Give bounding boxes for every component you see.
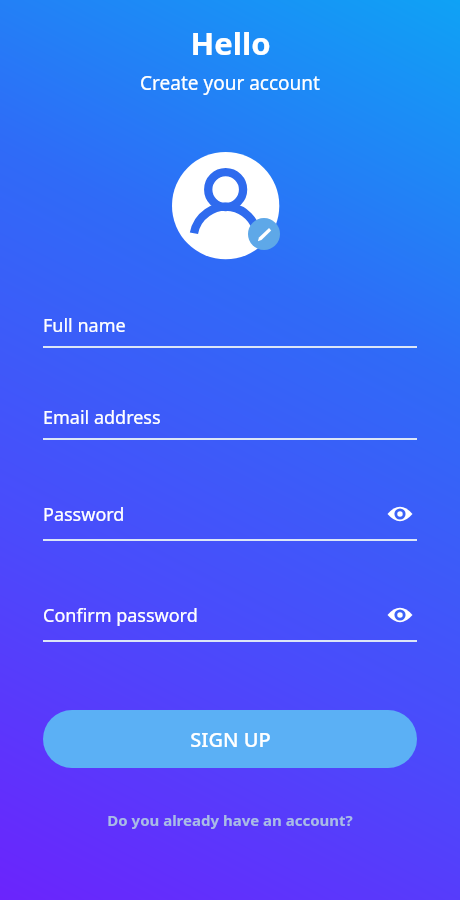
button[interactable]: Do you already have an account? (0, 810, 460, 830)
button[interactable]: Password (43, 497, 417, 541)
button[interactable]: Show password (383, 497, 417, 531)
button[interactable]: Full name (43, 313, 417, 348)
staticText: Hello (190, 22, 271, 64)
button[interactable]: Show confirm password (383, 598, 417, 632)
staticText: Password (43, 502, 383, 527)
staticText: SIGN UP (190, 726, 271, 753)
staticText: Email address (43, 405, 417, 430)
staticText: Do you already have an account? (107, 810, 353, 830)
staticText: Confirm password (43, 603, 383, 628)
button[interactable]: Edit profile photo (248, 218, 280, 250)
staticText: Create your account (140, 70, 320, 96)
button[interactable]: Confirm password (43, 598, 417, 642)
button[interactable]: Email address (43, 405, 417, 440)
staticText: Full name (43, 313, 417, 338)
button[interactable]: SIGN UP (43, 710, 417, 768)
